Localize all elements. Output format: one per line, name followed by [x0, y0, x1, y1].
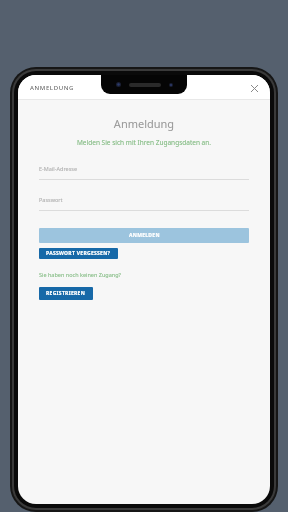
staticText: PASSWORT VERGESSEN?: [46, 250, 111, 257]
button[interactable]: Schließen: [246, 80, 262, 96]
staticText: Melden Sie sich mit Ihren Zugangsdaten a…: [18, 138, 270, 147]
staticText: E-Mail-Adresse: [39, 165, 78, 172]
staticText: REGISTRIEREN: [46, 290, 86, 297]
staticText: Passwort: [39, 196, 63, 203]
staticText: ANMELDEN: [129, 232, 160, 239]
staticText: Sie haben noch keinen Zugang?: [39, 271, 121, 278]
staticText: Anmeldung: [18, 116, 270, 131]
staticText: ANMELDUNG: [30, 84, 74, 92]
button[interactable]: ANMELDEN: [39, 228, 249, 243]
button[interactable]: PASSWORT VERGESSEN?: [39, 248, 118, 259]
button[interactable]: REGISTRIEREN: [39, 287, 93, 300]
